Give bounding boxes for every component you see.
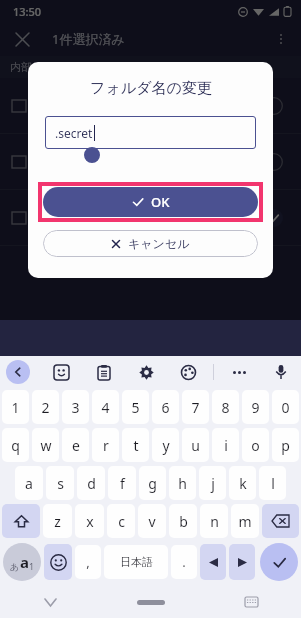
staticText: r bbox=[103, 436, 109, 455]
button[interactable]: Backspace bbox=[262, 504, 299, 538]
staticText: f bbox=[120, 474, 125, 493]
button[interactable]: Move right bbox=[229, 544, 255, 580]
staticText: i bbox=[224, 436, 228, 455]
button[interactable]: l bbox=[259, 466, 286, 500]
staticText: フォルダ名の変更 bbox=[90, 79, 212, 98]
button[interactable]: u bbox=[182, 428, 209, 462]
button[interactable]: w bbox=[32, 428, 59, 462]
button[interactable]: m bbox=[231, 504, 259, 538]
staticText: 4 bbox=[101, 398, 110, 417]
button[interactable]: z bbox=[43, 504, 72, 538]
button[interactable]: Hide keyboard bbox=[0, 586, 101, 618]
button[interactable]: 日本語 bbox=[104, 545, 168, 579]
button[interactable]: p bbox=[272, 428, 299, 462]
staticText: a bbox=[20, 552, 29, 572]
button[interactable]: . bbox=[171, 545, 197, 579]
button[interactable]: 4 bbox=[92, 390, 119, 424]
button[interactable]: Settings bbox=[134, 360, 158, 384]
button[interactable]: Clipboard bbox=[92, 360, 116, 384]
button[interactable]: Back bbox=[6, 360, 30, 384]
button[interactable]: 0 bbox=[272, 390, 299, 424]
button[interactable]: 2 bbox=[32, 390, 59, 424]
staticText: o bbox=[251, 436, 260, 455]
button[interactable]: キャンセル bbox=[43, 230, 258, 257]
button[interactable]: h bbox=[169, 466, 196, 500]
button[interactable]: Switch input mode bbox=[2, 542, 41, 582]
staticText: j bbox=[211, 474, 215, 493]
button[interactable]: 3 bbox=[62, 390, 89, 424]
staticText: 0 bbox=[281, 398, 290, 417]
button[interactable]: More options bbox=[267, 25, 295, 53]
button[interactable]: s bbox=[46, 466, 74, 500]
button[interactable]: b bbox=[169, 504, 197, 538]
button[interactable]: Shift bbox=[2, 504, 40, 538]
button[interactable]: n bbox=[200, 504, 228, 538]
button[interactable]: 6 bbox=[152, 390, 179, 424]
staticText: c bbox=[118, 512, 125, 531]
staticText: t bbox=[133, 436, 139, 455]
staticText: s bbox=[57, 474, 64, 493]
staticText: キャンセル bbox=[128, 236, 190, 251]
staticText: e bbox=[72, 436, 80, 455]
button[interactable]: j bbox=[199, 466, 226, 500]
staticText: l bbox=[271, 474, 275, 493]
button[interactable]: Voice input bbox=[269, 360, 293, 384]
button[interactable]: x bbox=[75, 504, 104, 538]
button[interactable]: d bbox=[77, 466, 105, 500]
staticText: 8 bbox=[221, 398, 230, 417]
staticText: 1 bbox=[29, 560, 35, 572]
button[interactable]: f bbox=[108, 466, 136, 500]
staticText: x bbox=[86, 512, 94, 531]
button[interactable]: , bbox=[75, 545, 101, 579]
button[interactable]: Home bbox=[101, 586, 201, 618]
staticText: q bbox=[11, 436, 20, 455]
staticText: v bbox=[148, 512, 156, 531]
button[interactable]: 5 bbox=[122, 390, 149, 424]
button[interactable]: Change keyboard bbox=[201, 586, 301, 618]
button[interactable]: q bbox=[2, 428, 29, 462]
button[interactable]: Enter bbox=[258, 542, 299, 582]
button[interactable]: Themes bbox=[176, 360, 200, 384]
button[interactable]: 7 bbox=[182, 390, 209, 424]
staticText: u bbox=[191, 436, 200, 455]
staticText: p bbox=[281, 436, 290, 455]
button[interactable]: i bbox=[212, 428, 239, 462]
button[interactable]: c bbox=[107, 504, 135, 538]
button[interactable]: o bbox=[242, 428, 269, 462]
button[interactable]: More bbox=[227, 360, 251, 384]
button[interactable]: 9 bbox=[242, 390, 269, 424]
button[interactable]: 8 bbox=[212, 390, 239, 424]
button[interactable]: Stickers bbox=[49, 360, 73, 384]
button[interactable]: v bbox=[138, 504, 166, 538]
staticText: 13:50 bbox=[13, 4, 42, 19]
staticText: a bbox=[25, 474, 33, 493]
button[interactable] bbox=[0, 134, 301, 190]
button[interactable]: Move left bbox=[200, 544, 226, 580]
button[interactable]: OK bbox=[43, 187, 258, 217]
button[interactable]: g bbox=[139, 466, 166, 500]
staticText: w bbox=[40, 436, 52, 455]
button[interactable]: e bbox=[62, 428, 89, 462]
button[interactable] bbox=[0, 190, 301, 246]
button[interactable]: a bbox=[15, 466, 43, 500]
staticText: 7 bbox=[191, 398, 200, 417]
staticText: 内部 bbox=[10, 60, 32, 74]
button[interactable] bbox=[0, 78, 301, 134]
staticText: .secret bbox=[55, 125, 93, 141]
staticText: h bbox=[178, 474, 187, 493]
button[interactable]: y bbox=[152, 428, 179, 462]
button[interactable]: Close bbox=[8, 25, 36, 53]
staticText: 3 bbox=[71, 398, 80, 417]
staticText: 5 bbox=[131, 398, 140, 417]
button[interactable]: k bbox=[229, 466, 256, 500]
staticText: 1件選択済み bbox=[52, 30, 125, 48]
button[interactable]: r bbox=[92, 428, 119, 462]
staticText: . bbox=[182, 553, 186, 571]
button[interactable]: t bbox=[122, 428, 149, 462]
button[interactable]: 1 bbox=[2, 390, 29, 424]
staticText: n bbox=[210, 512, 219, 531]
staticText: あ bbox=[10, 561, 20, 572]
staticText: 2 bbox=[41, 398, 50, 417]
staticText: 9 bbox=[251, 398, 260, 417]
button[interactable]: Emoji bbox=[44, 544, 72, 580]
